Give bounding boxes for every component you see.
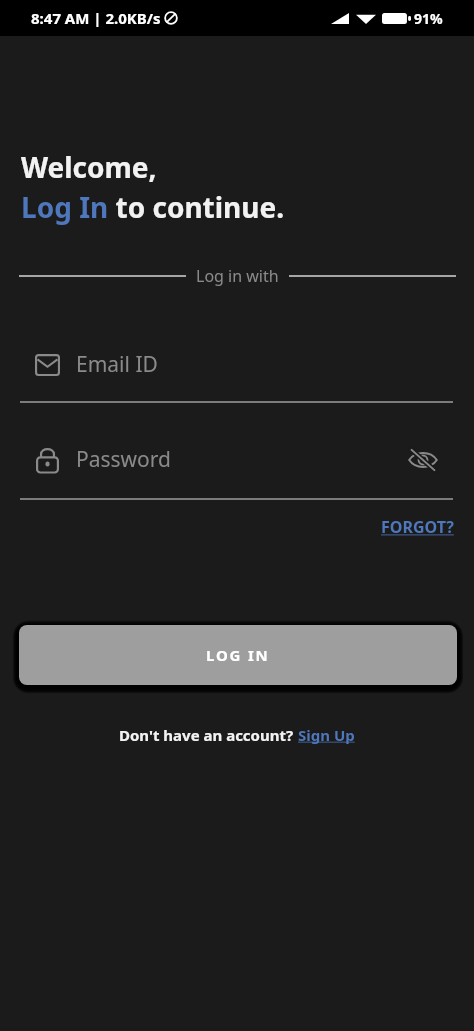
button[interactable]: LOG IN (19, 625, 457, 685)
button[interactable]: Email ID (20, 344, 453, 385)
staticText: Email ID (76, 350, 158, 379)
staticText: 91% (414, 9, 443, 28)
staticText: Don't have an account? (119, 725, 298, 745)
staticText: Log In to continue. (21, 188, 285, 226)
button[interactable]: FORGOT? (373, 509, 467, 545)
staticText: Password (76, 445, 171, 474)
staticText: 8:47 AM | 2.0KB/s (31, 8, 161, 28)
button[interactable]: Show password (406, 447, 440, 473)
button[interactable]: Password (20, 439, 453, 480)
staticText: LOG IN (206, 645, 270, 665)
staticText: FORGOT? (381, 516, 454, 538)
staticText: Log in with (196, 265, 279, 287)
staticText: Welcome, (21, 148, 157, 186)
staticText: Sign Up (298, 725, 355, 745)
button[interactable]: Sign Up (298, 725, 355, 745)
